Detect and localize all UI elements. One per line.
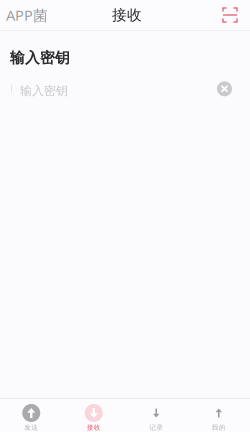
- button[interactable]: 发送: [0, 399, 62, 432]
- button[interactable]: 我的: [187, 399, 250, 432]
- button[interactable]: APP菌: [0, 1, 48, 29]
- staticText: 输入密钥: [10, 49, 70, 67]
- staticText: 接收: [112, 6, 142, 24]
- button[interactable]: 记录: [125, 399, 187, 432]
- button[interactable]: Scan: [223, 4, 250, 26]
- staticText: APP菌: [6, 5, 48, 25]
- button[interactable]: Clear: [211, 77, 250, 100]
- staticText: 发送: [24, 423, 38, 432]
- staticText: 记录: [149, 423, 163, 432]
- button[interactable]: 接收: [62, 399, 125, 432]
- staticText: 我的: [212, 423, 226, 432]
- staticText: 输入密钥: [20, 83, 68, 98]
- staticText: 接收: [87, 423, 101, 432]
